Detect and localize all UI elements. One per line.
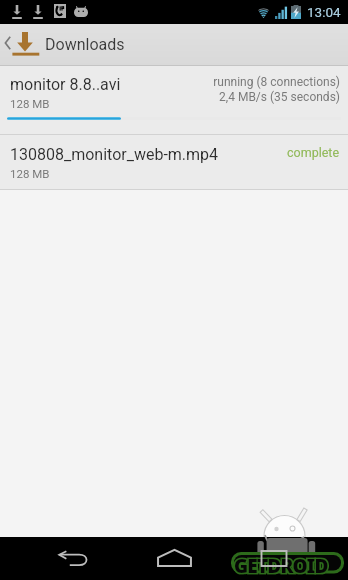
staticText: 13:04 (307, 4, 341, 20)
staticText: GETDROID (234, 553, 328, 579)
staticText: monitor 8.8..avi (10, 75, 121, 94)
button[interactable]: 130808_monitor_web-m.mp4 (0, 135, 348, 189)
staticText: running (8 connections) (213, 75, 340, 89)
staticText: 130808_monitor_web-m.mp4 (10, 145, 219, 164)
button[interactable]: Recent apps (251, 543, 297, 574)
button[interactable]: Back (50, 543, 96, 574)
staticText: Downloads (45, 35, 125, 54)
staticText: 128 MB (10, 97, 50, 110)
staticText: 2,4 MB/s (35 seconds) (219, 90, 340, 104)
staticText: 128 MB (10, 167, 50, 180)
staticText: complete (287, 145, 340, 160)
button[interactable]: monitor 8.8..avi (0, 66, 348, 134)
staticText: GETDROID (234, 553, 328, 579)
button[interactable]: Downloads, navigate up (0, 24, 348, 66)
button[interactable]: Home (150, 541, 198, 574)
